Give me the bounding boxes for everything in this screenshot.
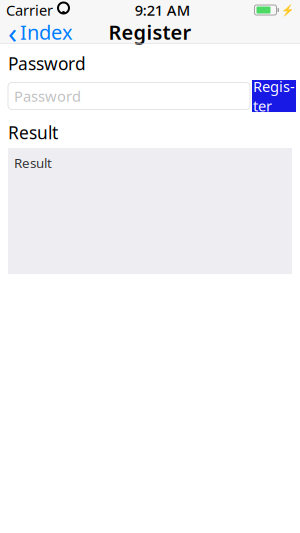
button[interactable]: Register: [252, 80, 296, 112]
staticText: Register: [108, 19, 191, 45]
staticText: ⚡: [281, 4, 294, 16]
staticText: Password: [14, 86, 81, 106]
staticText: Password: [8, 52, 86, 75]
staticText: 9:21 AM: [135, 0, 190, 20]
staticText: Result: [8, 121, 58, 144]
button[interactable]: ‹: [0, 20, 81, 44]
staticText: Carrier: [6, 0, 53, 20]
staticText: Index: [20, 19, 73, 45]
staticText: ‹: [8, 12, 17, 51]
staticText: Register: [253, 76, 295, 115]
staticText: Result: [14, 154, 52, 172]
